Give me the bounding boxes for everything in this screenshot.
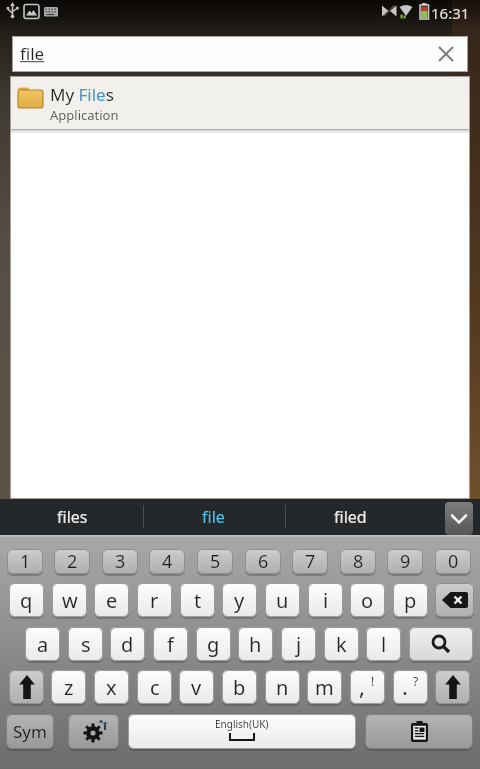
button[interactable]: l: [366, 627, 401, 661]
button[interactable]: 4: [149, 549, 185, 574]
button[interactable]: r: [137, 583, 172, 617]
button[interactable]: b: [222, 670, 257, 704]
staticText: file: [20, 42, 45, 65]
staticText: Application: [50, 106, 119, 124]
button[interactable]: f: [153, 627, 188, 661]
staticText: .: [402, 671, 408, 701]
staticText: 9: [400, 549, 411, 574]
button[interactable]: 7: [292, 549, 328, 574]
staticText: files: [57, 506, 88, 528]
button[interactable]: u: [265, 583, 300, 617]
staticText: q: [20, 587, 33, 614]
staticText: 3: [115, 549, 126, 574]
button[interactable]: y: [222, 583, 257, 617]
button[interactable]: p: [393, 583, 428, 617]
staticText: p: [404, 587, 417, 614]
staticText: ,: [359, 671, 365, 701]
button[interactable]: j: [281, 627, 316, 661]
button[interactable]: w: [52, 583, 87, 617]
staticText: a: [37, 631, 49, 658]
button[interactable]: [435, 670, 470, 704]
staticText: c: [150, 674, 160, 701]
staticText: i: [323, 587, 329, 614]
staticText: o: [361, 587, 374, 614]
staticText: j: [296, 631, 302, 658]
button[interactable]: n: [265, 670, 300, 704]
button[interactable]: 5: [197, 549, 233, 574]
button[interactable]: g: [196, 627, 231, 661]
staticText: 6: [258, 549, 269, 574]
staticText: 1: [20, 549, 31, 574]
button[interactable]: files: [30, 499, 114, 535]
staticText: b: [233, 674, 246, 701]
staticText: g: [207, 631, 220, 658]
button[interactable]: o: [350, 583, 385, 617]
staticText: s: [81, 631, 91, 658]
button[interactable]: k: [324, 627, 359, 661]
button[interactable]: .: [393, 670, 428, 704]
staticText: m: [315, 674, 334, 701]
button[interactable]: [409, 627, 473, 661]
staticText: English(UK): [215, 717, 269, 731]
button[interactable]: file: [171, 499, 255, 535]
button[interactable]: [445, 502, 473, 535]
button[interactable]: t: [180, 583, 215, 617]
button[interactable]: 3: [102, 549, 138, 574]
button[interactable]: 1: [7, 549, 43, 574]
staticText: e: [106, 587, 118, 614]
staticText: r: [150, 587, 159, 614]
staticText: Sym: [13, 720, 47, 743]
button[interactable]: c: [137, 670, 172, 704]
staticText: d: [121, 631, 134, 658]
button[interactable]: English(UK): [128, 714, 356, 749]
button[interactable]: 0: [435, 549, 471, 574]
staticText: 8: [353, 549, 364, 574]
staticText: v: [191, 674, 202, 701]
button[interactable]: a: [25, 627, 60, 661]
button[interactable]: [435, 583, 474, 617]
button[interactable]: My Files: [10, 76, 470, 130]
staticText: My Files: [50, 83, 114, 106]
staticText: ?: [413, 673, 419, 689]
button[interactable]: 6: [245, 549, 281, 574]
button[interactable]: d: [110, 627, 145, 661]
staticText: n: [276, 674, 289, 701]
button[interactable]: 8: [340, 549, 376, 574]
staticText: y: [234, 587, 245, 614]
staticText: t: [194, 587, 202, 614]
button[interactable]: i: [308, 583, 343, 617]
staticText: u: [276, 587, 289, 614]
button[interactable]: ,: [350, 670, 385, 704]
staticText: x: [106, 674, 117, 701]
button[interactable]: [68, 714, 119, 749]
button[interactable]: filed: [308, 499, 392, 535]
button[interactable]: [9, 670, 44, 704]
button[interactable]: m: [307, 670, 342, 704]
staticText: 7: [305, 549, 316, 574]
staticText: l: [381, 631, 387, 658]
staticText: f: [167, 631, 174, 658]
button[interactable]: file: [12, 36, 468, 72]
staticText: file: [202, 506, 225, 528]
button[interactable]: [365, 714, 473, 749]
button[interactable]: x: [94, 670, 129, 704]
button[interactable]: 2: [54, 549, 90, 574]
staticText: h: [249, 631, 262, 658]
staticText: 0: [448, 549, 459, 574]
button[interactable]: q: [9, 583, 44, 617]
button[interactable]: 9: [387, 549, 423, 574]
staticText: 4: [162, 549, 173, 574]
staticText: z: [64, 674, 74, 701]
button[interactable]: [438, 46, 454, 62]
button[interactable]: e: [94, 583, 129, 617]
button[interactable]: z: [51, 670, 86, 704]
staticText: 5: [210, 549, 221, 574]
button[interactable]: v: [179, 670, 214, 704]
staticText: filed: [334, 506, 367, 528]
staticText: w: [62, 587, 78, 614]
button[interactable]: Sym: [6, 714, 54, 749]
button[interactable]: h: [238, 627, 273, 661]
button[interactable]: s: [68, 627, 103, 661]
staticText: k: [336, 631, 347, 658]
staticText: !: [371, 673, 375, 689]
